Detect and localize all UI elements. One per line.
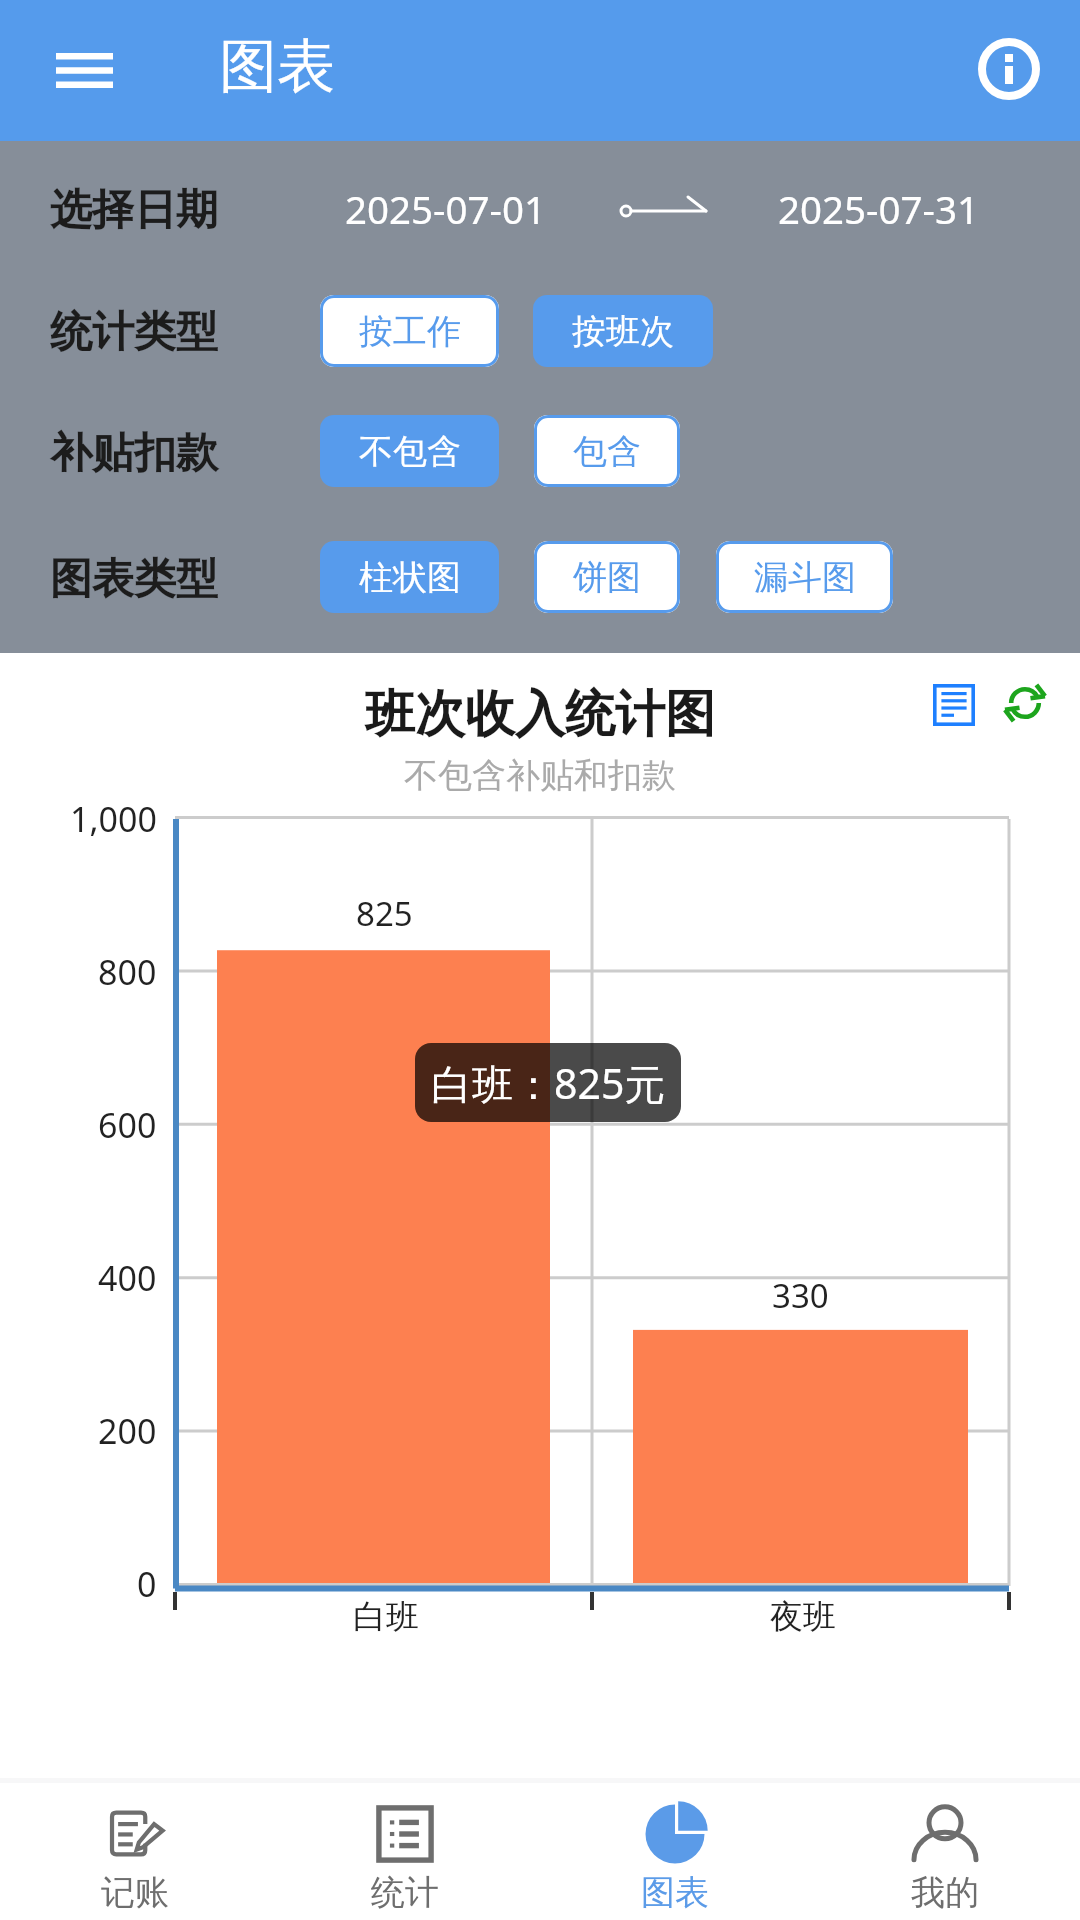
button[interactable]: 图表 bbox=[540, 1783, 810, 1914]
staticText: 按工作 bbox=[359, 310, 461, 353]
button[interactable]: Refresh bbox=[984, 662, 1066, 744]
staticText: 统计类型 bbox=[50, 306, 218, 359]
button[interactable]: 按工作 bbox=[320, 295, 499, 367]
staticText: 补贴扣款 bbox=[50, 427, 218, 480]
staticText: 班次收入统计图 bbox=[365, 683, 715, 746]
staticText: 2025-07-31 bbox=[778, 183, 979, 235]
staticText: 白班 bbox=[353, 1596, 419, 1638]
button[interactable]: 漏斗图 bbox=[716, 541, 893, 613]
staticText: 330 bbox=[772, 1273, 829, 1318]
button[interactable]: Info bbox=[963, 23, 1055, 115]
staticText: 400 bbox=[98, 1255, 157, 1301]
staticText: 图表 bbox=[219, 30, 335, 103]
staticText: 包含 bbox=[573, 430, 641, 473]
staticText: 800 bbox=[98, 949, 157, 995]
staticText: 不包含 bbox=[359, 430, 461, 473]
button[interactable]: 我的 bbox=[810, 1783, 1080, 1914]
button[interactable]: 按班次 bbox=[533, 295, 713, 367]
staticText: 0 bbox=[137, 1561, 157, 1607]
staticText: 白班：825元 bbox=[431, 1055, 666, 1111]
staticText: 2025-07-01 bbox=[345, 183, 546, 235]
button[interactable]: 包含 bbox=[534, 415, 680, 487]
staticText: 1,000 bbox=[70, 796, 157, 842]
button[interactable]: 不包含 bbox=[320, 415, 499, 487]
button[interactable]: List view bbox=[913, 664, 995, 746]
staticText: 饼图 bbox=[573, 556, 641, 599]
button[interactable]: 记账 bbox=[0, 1783, 270, 1914]
button[interactable]: 统计 bbox=[270, 1783, 540, 1914]
button[interactable]: Menu bbox=[38, 24, 130, 116]
staticText: 图表类型 bbox=[50, 553, 218, 606]
button[interactable]: 2025-07-01 bbox=[338, 178, 548, 240]
staticText: 不包含补贴和扣款 bbox=[404, 754, 676, 797]
staticText: 统计 bbox=[371, 1871, 439, 1914]
staticText: 我的 bbox=[911, 1871, 979, 1914]
button[interactable]: 2025-07-31 bbox=[771, 178, 981, 240]
staticText: 按班次 bbox=[572, 310, 674, 353]
staticText: 夜班 bbox=[770, 1596, 836, 1638]
staticText: 图表 bbox=[641, 1871, 709, 1914]
staticText: 600 bbox=[98, 1102, 157, 1148]
staticText: 柱状图 bbox=[359, 556, 461, 599]
staticText: 825 bbox=[356, 891, 413, 936]
button[interactable]: 饼图 bbox=[534, 541, 680, 613]
staticText: 200 bbox=[98, 1408, 157, 1454]
button[interactable]: 柱状图 bbox=[320, 541, 499, 613]
staticText: 漏斗图 bbox=[754, 556, 856, 599]
staticText: 选择日期 bbox=[50, 184, 218, 237]
staticText: 记账 bbox=[101, 1871, 169, 1914]
